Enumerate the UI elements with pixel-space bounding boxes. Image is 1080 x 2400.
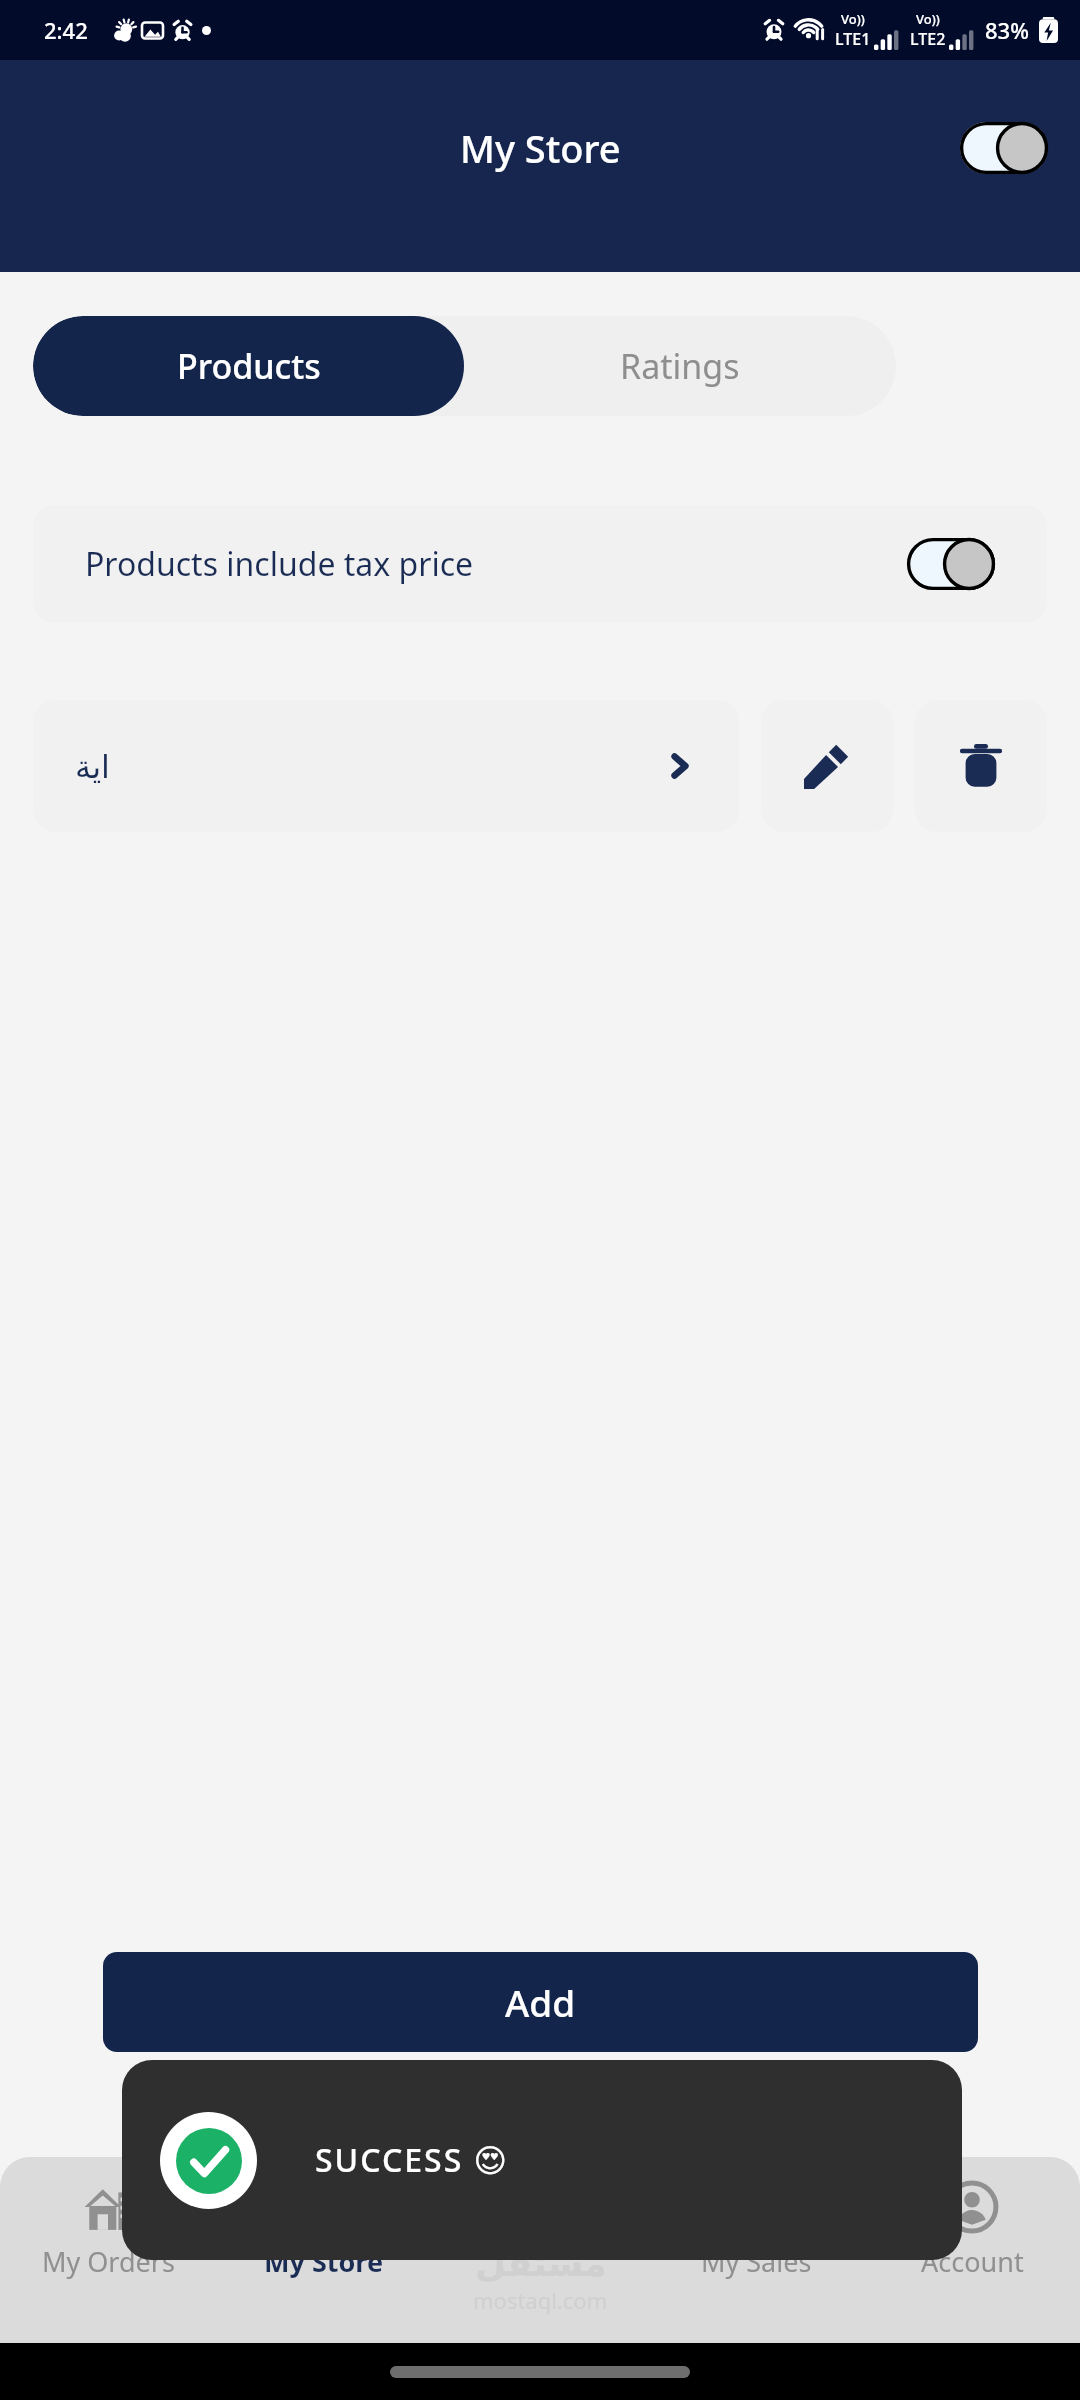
staticText: mostaql.com [473,2285,608,2315]
staticText: 2:42 [44,15,88,45]
button[interactable]: My Store [216,2177,432,2284]
button[interactable]: Products [33,316,464,416]
button[interactable]: Edit product [761,700,893,832]
staticText: Vo)) [916,10,940,28]
staticText: 83% [985,15,1029,45]
button[interactable]: اية [33,700,739,832]
staticText: My Store [264,2243,384,2280]
staticText: مستقل [475,2243,607,2285]
staticText: Products include tax price [85,542,474,586]
staticText: My Store [460,122,621,174]
staticText: Products [177,343,321,389]
button[interactable]: My Orders [0,2177,216,2284]
button[interactable]: Ratings [464,316,896,416]
staticText: LTE1 [835,28,871,50]
button[interactable]: Delete product [915,700,1047,832]
button[interactable]: Account [864,2177,1080,2284]
staticText: My Orders [42,2243,175,2280]
staticText: Ratings [620,343,740,389]
button[interactable]: Add [103,1952,978,2052]
staticText: My Sales [701,2243,812,2280]
button[interactable]: Store availability toggle [960,122,1048,174]
staticText: Add [505,1977,576,2027]
staticText: اية [75,748,110,785]
button[interactable]: Products include tax price [33,505,1047,623]
staticText: Vo)) [841,10,865,28]
staticText: Account [921,2243,1024,2280]
staticText: SUCCESS 😍 [315,2138,509,2182]
button[interactable]: My Sales [648,2177,864,2284]
staticText: LTE2 [910,28,946,50]
